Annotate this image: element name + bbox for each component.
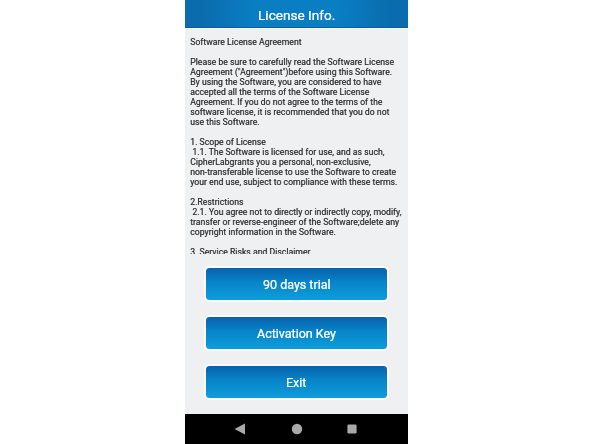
staticText: Software License Agreement Please be sur…	[190, 37, 402, 254]
button[interactable]: 90 days trial	[206, 268, 387, 300]
staticText: Activation Key	[257, 326, 336, 341]
button[interactable]: Activation Key	[206, 317, 387, 349]
staticText: 90 days trial	[263, 277, 331, 292]
button[interactable]: Home	[274, 414, 320, 444]
button[interactable]: Exit	[206, 366, 387, 398]
staticText: Exit	[286, 375, 307, 390]
button[interactable]: Back	[217, 414, 263, 444]
staticText: Software License Agreement Please be sur…	[190, 37, 402, 254]
button[interactable]: Recent apps	[329, 414, 375, 444]
staticText: License Info.	[258, 7, 336, 23]
